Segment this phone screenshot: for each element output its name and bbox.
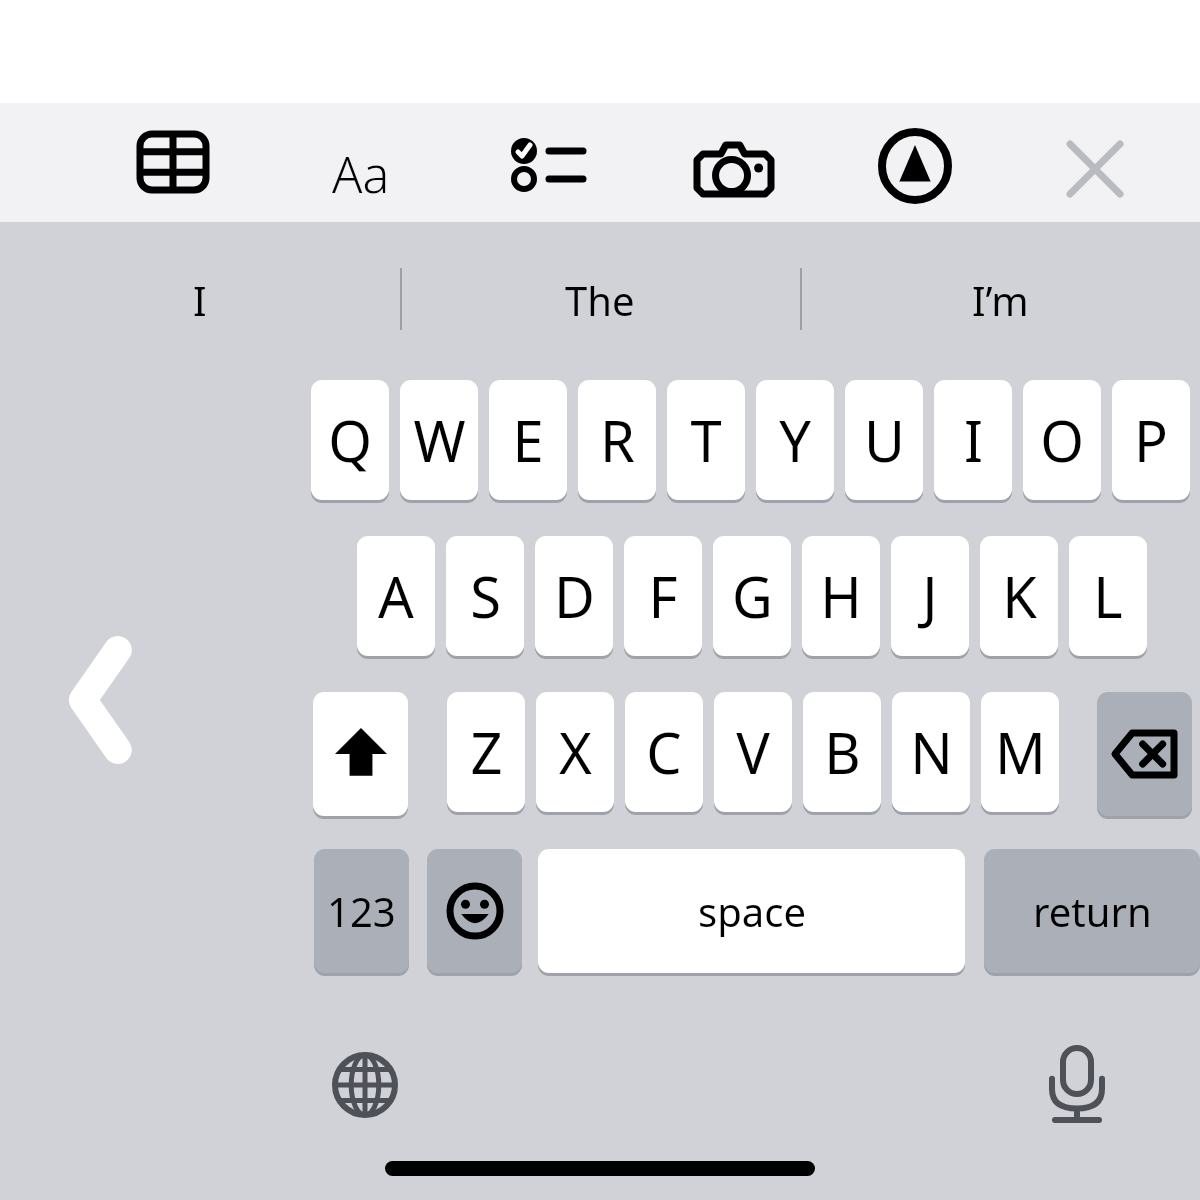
button[interactable]: Aa [325,140,397,198]
staticText: O [1040,402,1084,478]
button[interactable]: J [891,536,969,656]
staticText: H [820,558,862,634]
staticText: P [1134,402,1168,478]
button[interactable]: Switch keyboard [332,1052,398,1118]
staticText: A [378,558,414,634]
button[interactable]: Z [447,692,525,812]
button[interactable]: I [934,380,1012,500]
staticText: L [1093,558,1123,634]
staticText: I’m [972,273,1029,327]
button[interactable]: V [714,692,792,812]
button[interactable]: M [981,692,1059,812]
staticText: T [690,402,722,478]
button[interactable]: Close [1068,142,1122,196]
staticText: I [964,402,983,478]
button[interactable]: Camera [693,142,775,198]
staticText: Aa [332,140,390,198]
button[interactable]: Y [756,380,834,500]
button[interactable]: I’m [800,258,1200,342]
button[interactable]: F [624,536,702,656]
staticText: D [554,558,595,634]
button[interactable]: S [446,536,524,656]
staticText: E [512,402,544,478]
staticText: 123 [327,884,396,938]
button[interactable]: N [892,692,970,812]
staticText: S [470,558,501,634]
staticText: F [648,558,678,634]
staticText: G [732,558,773,634]
staticText: W [413,402,466,478]
staticText: K [1002,558,1037,634]
button[interactable]: Backspace [1097,692,1192,816]
staticText: I [193,273,207,327]
button[interactable]: A [357,536,435,656]
staticText: U [864,402,905,478]
button[interactable]: H [802,536,880,656]
button[interactable]: I [0,258,400,342]
staticText: space [698,884,806,938]
button[interactable]: R [578,380,656,500]
button[interactable]: Markup [881,131,949,201]
button[interactable]: 123 [314,849,409,973]
button[interactable]: The [400,258,800,342]
button[interactable]: Q [311,380,389,500]
button[interactable]: T [667,380,745,500]
staticText: Z [470,714,503,790]
staticText: B [824,714,861,790]
button[interactable]: K [980,536,1058,656]
staticText: J [922,558,938,634]
button[interactable]: U [845,380,923,500]
staticText: C [646,714,682,790]
button[interactable]: Table [137,131,209,193]
staticText: N [910,714,953,790]
staticText: V [736,714,770,790]
button[interactable]: E [489,380,567,500]
button[interactable]: space [538,849,965,973]
button[interactable]: Checklist [509,136,583,194]
button[interactable]: D [535,536,613,656]
button[interactable]: P [1112,380,1190,500]
button[interactable]: Shift [313,692,408,816]
staticText: Q [328,402,372,478]
button[interactable]: Dictate [1048,1046,1106,1124]
button[interactable]: B [803,692,881,812]
staticText: The [565,273,635,327]
button[interactable]: O [1023,380,1101,500]
button[interactable]: W [400,380,478,500]
button[interactable]: C [625,692,703,812]
staticText: X [559,714,592,790]
staticText: Y [779,402,811,478]
staticText: M [995,714,1046,790]
staticText: return [1033,884,1152,938]
staticText: R [600,402,635,478]
button[interactable]: G [713,536,791,656]
button[interactable]: return [984,849,1200,973]
button[interactable]: L [1069,536,1147,656]
button[interactable]: Previous [60,636,136,764]
button[interactable]: Emoji [427,849,522,973]
button[interactable]: X [536,692,614,812]
